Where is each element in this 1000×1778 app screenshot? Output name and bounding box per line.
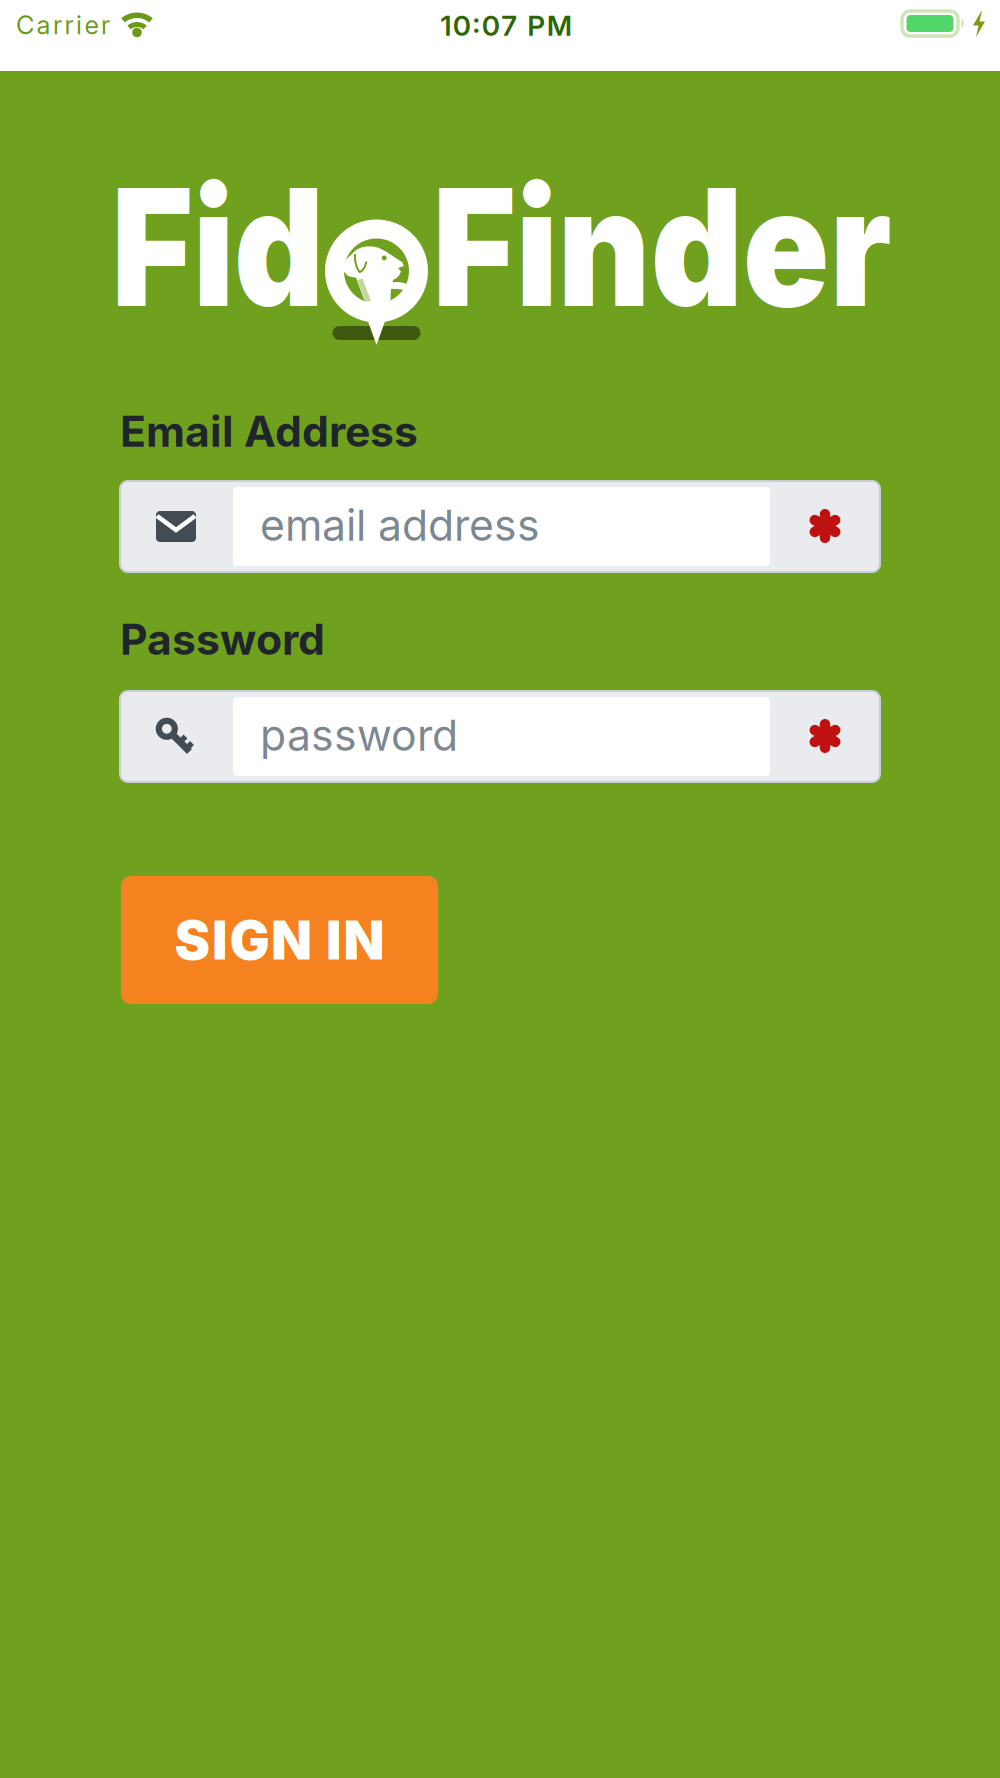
staticText: Email Address [120,406,418,456]
button[interactable]: Password [120,691,880,782]
staticText: Password [120,614,325,664]
staticText: Carrier [16,10,110,40]
staticText: 10:07 PM [440,9,572,42]
staticText: SIGN IN [174,908,384,971]
button[interactable]: Email address [120,481,880,572]
staticText: password [260,710,458,760]
button[interactable]: SIGN IN [121,876,438,1004]
staticText: email address [260,500,540,550]
staticText: Fid [111,151,359,343]
staticText: Finder [432,151,956,343]
